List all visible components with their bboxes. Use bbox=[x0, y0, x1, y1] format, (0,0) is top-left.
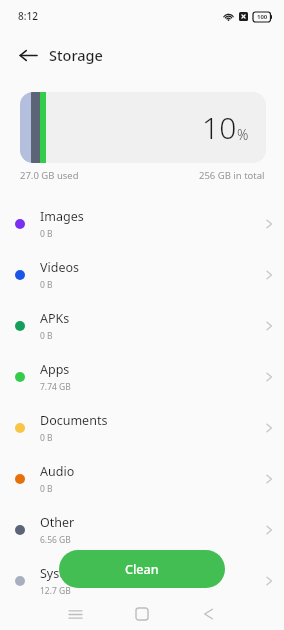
staticText: 0 B bbox=[40, 330, 53, 342]
button[interactable]: Documents bbox=[0, 402, 284, 453]
staticText: Audio bbox=[40, 463, 75, 480]
button[interactable]: Clean bbox=[59, 550, 225, 588]
staticText: Apps bbox=[40, 361, 70, 378]
staticText: Other bbox=[40, 514, 75, 531]
button[interactable]: Images bbox=[0, 198, 284, 249]
button[interactable]: Back bbox=[193, 598, 225, 630]
staticText: Images bbox=[40, 208, 84, 225]
button[interactable]: Other bbox=[0, 504, 284, 555]
staticText: Clean bbox=[125, 561, 159, 578]
staticText: System bbox=[40, 565, 83, 582]
staticText: 256 GB in total bbox=[199, 169, 265, 182]
staticText: APKs bbox=[40, 310, 70, 327]
staticText: 0 B bbox=[40, 228, 53, 240]
staticText: 27.0 GB used bbox=[20, 169, 79, 182]
staticText: 0 B bbox=[40, 432, 53, 444]
button[interactable]: APKs bbox=[0, 300, 284, 351]
staticText: 100 bbox=[257, 13, 268, 21]
staticText: 0 B bbox=[40, 279, 53, 291]
staticText: 6.56 GB bbox=[40, 534, 71, 546]
staticText: 8:12 bbox=[18, 9, 38, 23]
staticText: 10 bbox=[202, 107, 237, 148]
button[interactable]: Back bbox=[10, 38, 46, 72]
button[interactable]: 10 bbox=[20, 92, 266, 163]
staticText: % bbox=[237, 125, 249, 144]
staticText: 12.7 GB bbox=[40, 585, 71, 597]
button[interactable]: Videos bbox=[0, 249, 284, 300]
button[interactable]: Recents bbox=[59, 598, 91, 630]
staticText: Storage bbox=[49, 45, 103, 65]
button[interactable]: Apps bbox=[0, 351, 284, 402]
staticText: 7.74 GB bbox=[40, 381, 71, 393]
staticText: Documents bbox=[40, 412, 108, 429]
button[interactable]: System bbox=[0, 555, 284, 606]
button[interactable]: Home bbox=[126, 598, 158, 630]
staticText: Videos bbox=[40, 259, 80, 276]
staticText: 0 B bbox=[40, 483, 53, 495]
button[interactable]: Audio bbox=[0, 453, 284, 504]
